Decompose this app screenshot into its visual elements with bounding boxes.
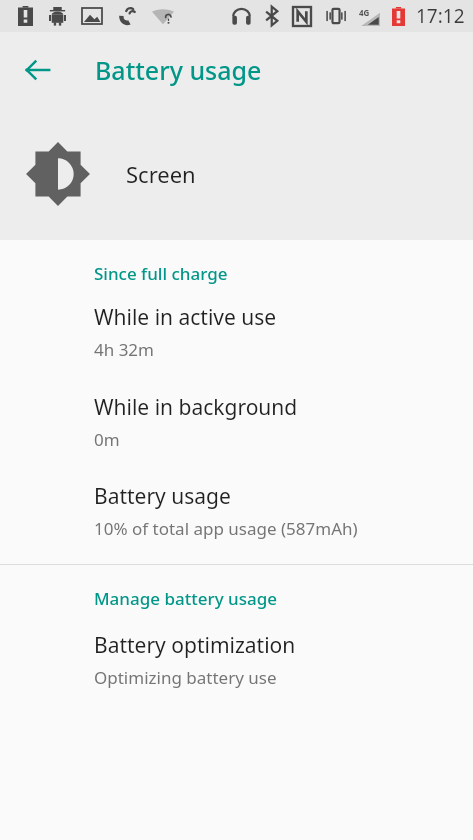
staticText: Since full charge [94,262,228,285]
staticText: Battery optimization [94,631,296,660]
staticText: 0m [94,428,120,451]
staticText: 4G [359,7,370,18]
staticText: 17:12 [416,3,465,29]
staticText: Battery usage [95,53,262,87]
staticText: Battery usage [94,482,231,511]
staticText: 10% of total app usage (587mAh) [94,517,358,540]
button[interactable]: While in background [0,393,473,451]
staticText: While in active use [94,303,277,332]
staticText: Optimizing battery use [94,666,277,689]
staticText: 4h 32m [94,338,154,361]
staticText: Manage battery usage [94,587,278,610]
button[interactable]: Battery optimization [0,631,473,689]
button[interactable]: Battery usage [0,482,473,540]
staticText: Screen [126,159,196,189]
staticText: While in background [94,393,298,422]
button[interactable]: Back [14,46,62,94]
button[interactable]: While in active use [0,303,473,361]
